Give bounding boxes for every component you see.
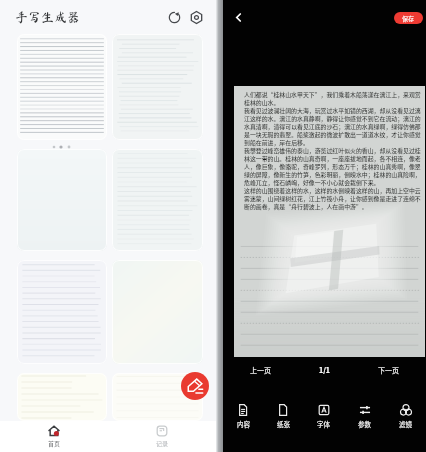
staticText: 1/1 <box>319 365 330 375</box>
button[interactable]: 上一页 <box>229 357 292 383</box>
button[interactable]: 纸张 <box>263 383 303 449</box>
button[interactable]: Back <box>232 11 245 24</box>
button[interactable]: 滤镜 <box>385 383 426 449</box>
button[interactable] <box>17 373 107 421</box>
staticText: 下一页 <box>378 365 399 375</box>
staticText: 上一页 <box>250 365 271 375</box>
staticText: 滤镜 <box>399 419 412 428</box>
staticText: 内容 <box>237 419 250 428</box>
staticText: 参数 <box>358 419 371 428</box>
button[interactable]: New handwriting <box>181 372 209 400</box>
button[interactable] <box>112 373 203 421</box>
staticText: 字体 <box>317 419 330 428</box>
button[interactable] <box>17 34 107 140</box>
button[interactable]: 保存 <box>394 12 423 24</box>
button[interactable] <box>17 260 107 364</box>
button[interactable]: 记录 <box>108 421 216 452</box>
button[interactable]: 1/1 <box>292 357 356 383</box>
staticText: 手写生成器 <box>15 11 81 24</box>
button[interactable]: 首页 <box>0 421 108 452</box>
button[interactable]: 参数 <box>344 383 385 449</box>
staticText: 记录 <box>156 439 169 448</box>
staticText: 保存 <box>402 14 415 23</box>
staticText: 首页 <box>48 439 61 448</box>
button[interactable]: Refresh <box>165 8 183 26</box>
staticText: 纸张 <box>277 419 290 428</box>
button[interactable]: Settings <box>187 8 205 26</box>
button[interactable]: 内容 <box>223 383 263 449</box>
button[interactable] <box>112 34 203 140</box>
button[interactable]: 字体 <box>303 383 344 449</box>
button[interactable] <box>112 149 203 251</box>
staticText: 人们都说“桂林山水甲天下”，我们乘着木船荡漾在漓江上，来观赏桂林的山水。 我看见… <box>244 90 421 210</box>
button[interactable]: 下一页 <box>356 357 420 383</box>
